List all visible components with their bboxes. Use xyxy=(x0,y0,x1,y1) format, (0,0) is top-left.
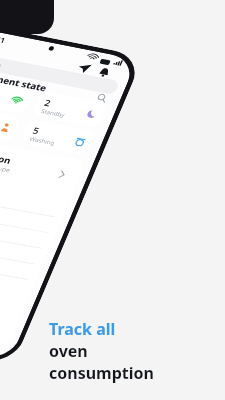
staticText: oven xyxy=(49,340,88,362)
staticText: Standby xyxy=(40,107,66,119)
button[interactable]: 1 xyxy=(0,104,22,142)
staticText: Washing xyxy=(28,135,56,147)
button[interactable]: Notifications xyxy=(94,64,114,80)
staticText: 2 xyxy=(43,96,53,109)
button[interactable]: Open consumption xyxy=(53,168,71,181)
button[interactable]: Search xyxy=(0,53,120,95)
button[interactable]: 5 xyxy=(20,119,97,156)
button[interactable]: Send xyxy=(74,60,95,76)
staticText: consumption xyxy=(49,362,154,384)
staticText: Consumption by type xyxy=(0,155,12,175)
button[interactable]: 3 xyxy=(0,76,34,114)
button[interactable]: Search equipment xyxy=(92,90,111,105)
button[interactable]: Profile xyxy=(0,39,1,60)
staticText: Track all xyxy=(49,318,116,340)
staticText: 5 xyxy=(31,124,41,137)
staticText: Consumption xyxy=(0,143,13,166)
staticText: Search xyxy=(0,58,3,70)
staticText: 9:41 xyxy=(0,33,7,45)
button[interactable]: 2 xyxy=(31,91,109,128)
staticText: Equipment state xyxy=(0,67,49,94)
